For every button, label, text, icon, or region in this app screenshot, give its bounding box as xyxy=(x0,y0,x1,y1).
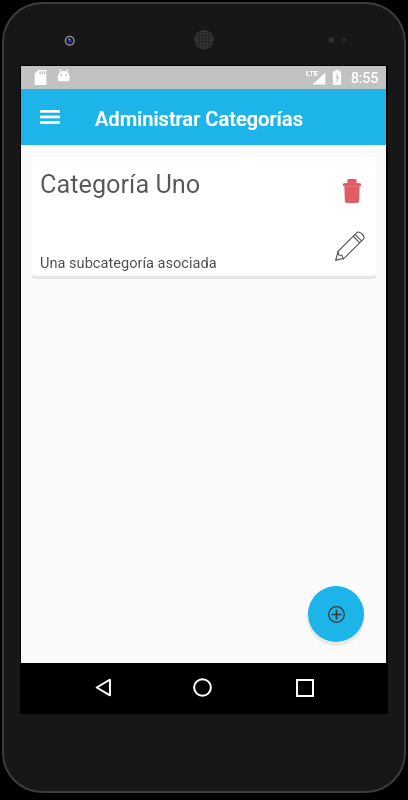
staticText: Una subcategoría asociada xyxy=(40,254,217,271)
button[interactable]: Home xyxy=(172,663,233,712)
button[interactable]: Back xyxy=(73,663,134,712)
staticText: Administrar Categorías xyxy=(95,107,304,131)
staticText: 8:55 xyxy=(351,70,378,86)
staticText: Categoría Uno xyxy=(40,170,201,200)
button[interactable]: Delete xyxy=(333,172,370,209)
button[interactable]: Edit xyxy=(326,225,370,269)
staticText: LTE xyxy=(306,69,318,78)
button[interactable]: Add xyxy=(308,586,364,642)
button[interactable]: Menu xyxy=(28,95,72,139)
button[interactable]: Categoría Uno xyxy=(32,157,376,276)
button[interactable]: Recents xyxy=(274,663,335,712)
